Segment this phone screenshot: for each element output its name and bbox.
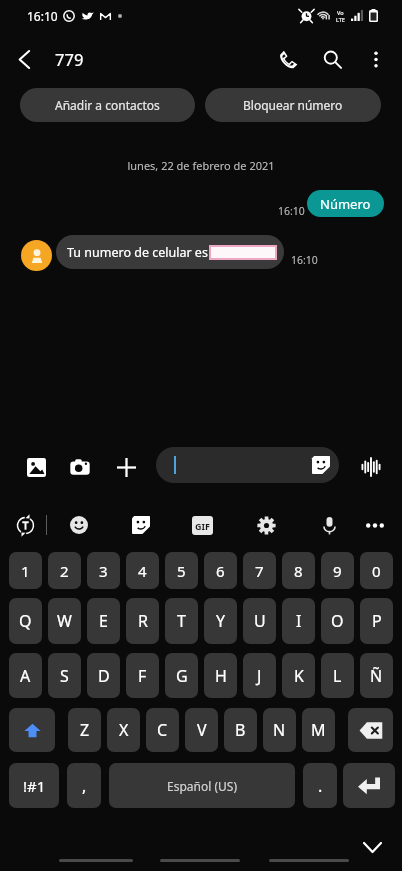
button[interactable]: Back [0, 36, 48, 82]
button[interactable]: A [9, 653, 42, 698]
staticText: U [254, 610, 266, 632]
button[interactable]: N [263, 708, 296, 752]
button[interactable]: 3 [87, 552, 120, 589]
staticText: . [318, 775, 323, 797]
button[interactable]: 8 [282, 552, 315, 589]
button[interactable]: Voice input [312, 506, 346, 544]
staticText: Ñ [370, 665, 383, 687]
staticText: O [331, 610, 344, 632]
staticText: F [138, 665, 147, 687]
button[interactable]: 7 [243, 552, 276, 589]
button[interactable]: 5 [165, 552, 198, 589]
button[interactable]: Voice message [357, 453, 385, 481]
button[interactable]: Comma [67, 763, 101, 808]
button[interactable]: 1 [9, 552, 42, 589]
button[interactable]: K [282, 653, 315, 698]
staticText: S [60, 665, 69, 687]
staticText: LTE [336, 16, 345, 23]
button[interactable]: Shift [9, 708, 55, 752]
button[interactable]: Y [204, 598, 237, 644]
button[interactable]: Period [303, 763, 337, 808]
button[interactable]: Emoji [62, 506, 96, 544]
staticText: 16:10 [291, 253, 318, 267]
button[interactable]: E [87, 598, 120, 644]
staticText: V [197, 719, 207, 741]
staticText: Z [80, 719, 90, 741]
button[interactable]: W [48, 598, 81, 644]
button[interactable]: P [360, 598, 393, 644]
button[interactable]: C [146, 708, 179, 752]
button[interactable]: Camera [63, 450, 97, 484]
button[interactable]: Número [307, 190, 384, 217]
button[interactable]: 4 [126, 552, 159, 589]
button[interactable]: G [165, 653, 198, 698]
button[interactable]: Settings [249, 506, 283, 544]
button[interactable]: 6 [204, 552, 237, 589]
button[interactable]: M [302, 708, 335, 752]
staticText: Q [19, 610, 32, 632]
button[interactable]: J [243, 653, 276, 698]
button[interactable]: Space [109, 763, 295, 808]
button[interactable]: GIF [192, 516, 213, 535]
button[interactable]: More options [354, 37, 398, 81]
button[interactable]: L [321, 653, 354, 698]
button[interactable]: Backspace [348, 708, 393, 752]
button[interactable]: O [321, 598, 354, 644]
button[interactable]: Bloquear número [205, 88, 381, 122]
button[interactable]: 2 [48, 552, 81, 589]
button[interactable]: B [224, 708, 257, 752]
staticText: 3 [99, 561, 108, 581]
staticText: T [177, 610, 186, 632]
button[interactable]: Gallery [19, 450, 53, 484]
staticText: 9 [333, 561, 342, 581]
button[interactable]: V [185, 708, 218, 752]
button[interactable]: Z [68, 708, 101, 752]
button[interactable]: Añadir a contactos [20, 88, 195, 122]
staticText: GIF [195, 520, 210, 532]
staticText: L [333, 665, 342, 687]
button[interactable]: H [204, 653, 237, 698]
button[interactable]: Stickers [124, 506, 158, 544]
button[interactable]: R [126, 598, 159, 644]
staticText: G [176, 665, 188, 687]
button[interactable]: Enter [343, 763, 395, 808]
staticText: 2 [60, 561, 69, 581]
button[interactable]: 0 [360, 552, 393, 589]
button[interactable]: X [107, 708, 140, 752]
button[interactable]: T [165, 598, 198, 644]
button[interactable]: S [48, 653, 81, 698]
button[interactable]: Stickers [312, 456, 330, 474]
button[interactable]: D [87, 653, 120, 698]
button[interactable]: F [126, 653, 159, 698]
staticText: D [98, 665, 110, 687]
button[interactable]: Add attachment [109, 450, 143, 484]
button[interactable]: Q [9, 598, 42, 644]
staticText: Bloquear número [243, 97, 343, 113]
staticText: 16:10 [278, 204, 305, 218]
button[interactable]: Search [310, 37, 354, 81]
staticText: 7 [255, 561, 264, 581]
staticText: Vo [337, 9, 344, 16]
button[interactable]: Ñ [360, 653, 393, 698]
staticText: I [296, 610, 302, 632]
button[interactable]: Recents [59, 853, 133, 867]
button[interactable]: Tu numero de celular es [56, 235, 284, 269]
staticText: 6 [216, 561, 225, 581]
staticText: N [273, 719, 286, 741]
button[interactable]: I [282, 598, 315, 644]
staticText: J [257, 665, 262, 687]
button[interactable]: Symbols [9, 763, 59, 808]
staticText: M [311, 719, 326, 741]
button[interactable]: Hide keyboard [358, 833, 386, 861]
button[interactable]: Back [269, 853, 349, 867]
staticText: 779 [55, 48, 84, 70]
button[interactable]: Home [160, 853, 240, 867]
button[interactable]: 9 [321, 552, 354, 589]
button[interactable]: Translate [8, 506, 42, 544]
button[interactable]: Stickers [156, 447, 339, 483]
staticText: E [99, 610, 108, 632]
button[interactable]: U [243, 598, 276, 644]
button[interactable]: Call [266, 37, 310, 81]
staticText: P [372, 610, 382, 632]
button[interactable]: More [358, 506, 392, 544]
